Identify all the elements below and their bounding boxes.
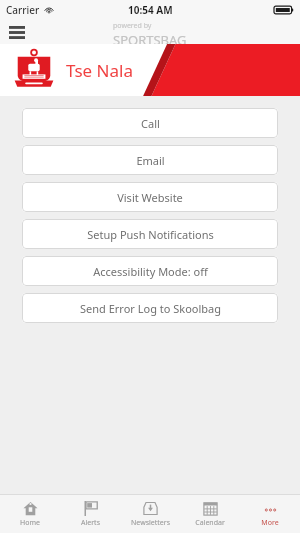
staticText: Accessibility Mode: off: [93, 264, 208, 279]
button[interactable]: Accessibility Mode: off: [22, 256, 278, 286]
staticText: Call: [141, 116, 160, 131]
button[interactable]: Menu: [4, 20, 30, 44]
button[interactable]: Email: [22, 145, 278, 175]
button[interactable]: Visit Website: [22, 182, 278, 212]
staticText: Calendar: [195, 518, 225, 528]
button[interactable]: More: [240, 495, 300, 533]
staticText: More: [261, 518, 279, 528]
button[interactable]: Newsletters: [120, 495, 180, 533]
staticText: 10:54 AM: [128, 3, 173, 17]
staticText: SPORTSBAG: [113, 31, 187, 44]
staticText: Setup Push Notifications: [87, 227, 214, 242]
staticText: Home: [20, 518, 40, 528]
button[interactable]: Send Error Log to Skoolbag: [22, 293, 278, 323]
button[interactable]: Calendar: [180, 495, 240, 533]
button[interactable]: Call: [22, 108, 278, 138]
staticText: Send Error Log to Skoolbag: [80, 301, 221, 316]
staticText: powered by: [113, 21, 152, 31]
button[interactable]: Alerts: [60, 495, 120, 533]
staticText: Visit Website: [117, 190, 183, 205]
staticText: Tse Nala: [66, 59, 133, 82]
button[interactable]: Setup Push Notifications: [22, 219, 278, 249]
button[interactable]: Home: [0, 495, 60, 533]
staticText: Newsletters: [131, 518, 170, 528]
staticText: Alerts: [81, 518, 100, 528]
staticText: Carrier: [6, 3, 40, 17]
staticText: Email: [136, 153, 165, 168]
